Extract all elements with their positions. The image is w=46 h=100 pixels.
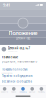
staticText: Показать полностью [2,68,28,71]
button[interactable]: Поиск [9,86,18,94]
button[interactable]: Профиль [37,86,46,94]
staticText: Поиск [11,91,16,93]
staticText: Детский сад [15,36,30,40]
staticText: Положение [8,29,37,36]
staticText: 24 просмотра [2,72,13,74]
staticText: Перейти к обсуждению [2,74,33,78]
staticText: Уважаемые [2,55,19,59]
staticText: Новости [1,91,8,93]
button[interactable]: Сервисы [18,86,28,94]
button[interactable]: Новости [0,86,9,94]
staticText: Друзья [29,91,35,93]
button[interactable]: Друзья [28,86,37,94]
staticText: Профиль [38,91,45,93]
staticText: Сервисы [19,91,26,93]
staticText: Детский сад №7 [8,46,31,50]
staticText: вчера в 18:42 [8,50,18,52]
staticText: родители, напоминаем о [2,60,38,63]
staticText: Все записи сообщества [2,80,32,83]
staticText: 9:41 [3,2,10,8]
